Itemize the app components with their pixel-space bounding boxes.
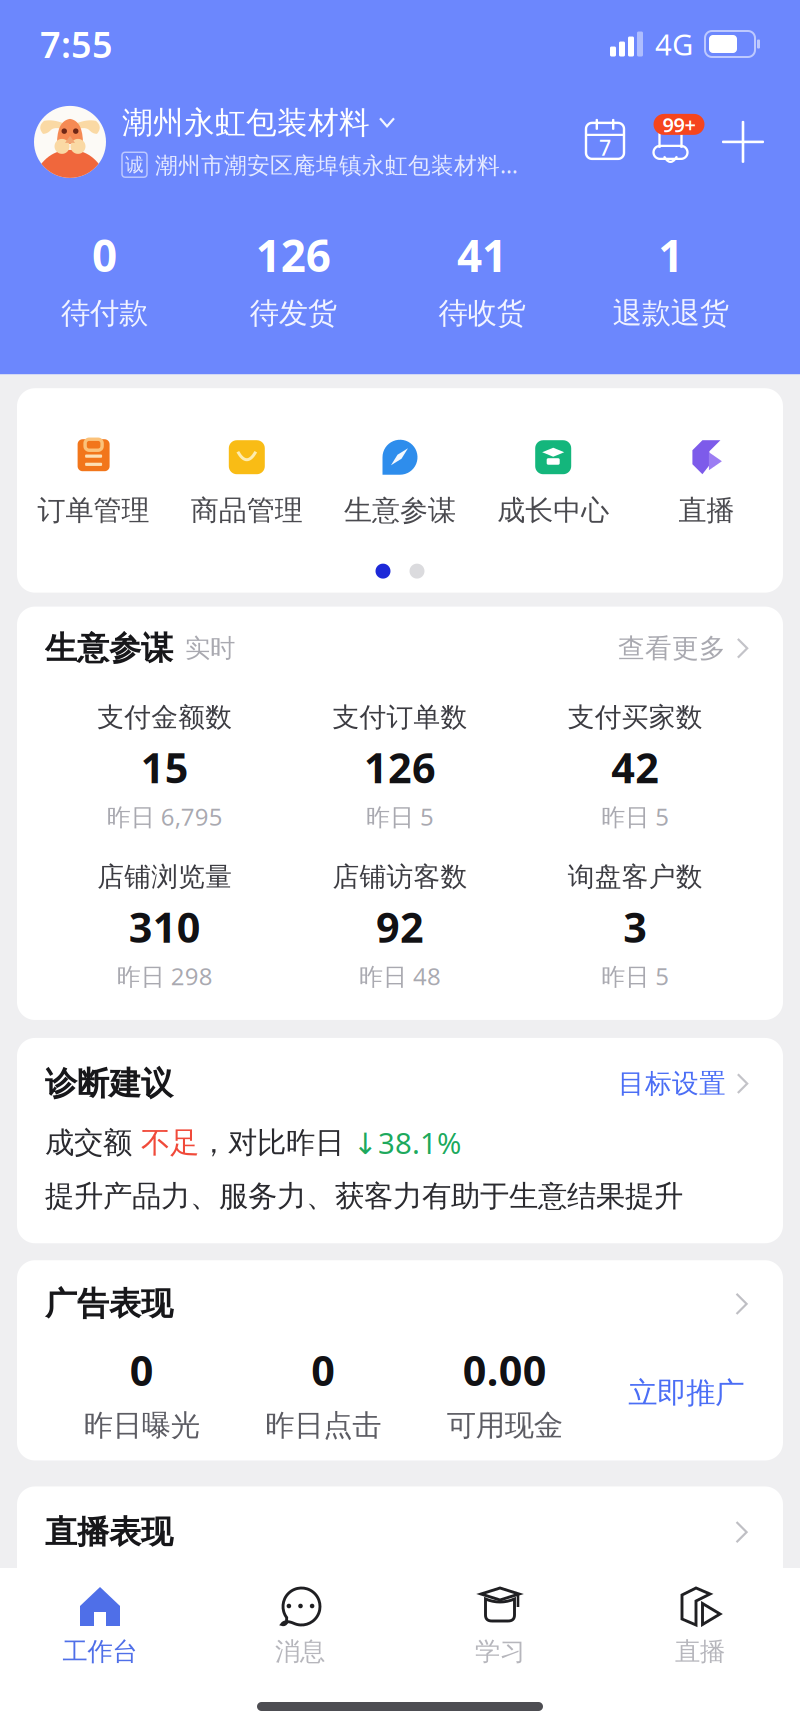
staticText: 店铺浏览量	[97, 860, 232, 893]
staticText: 提升产品力、服务力、获客力有助于生意结果提升	[45, 1178, 683, 1214]
staticText: 消息	[275, 1636, 325, 1667]
staticText: 诚	[125, 153, 144, 176]
button[interactable]: 商品管理	[170, 437, 323, 528]
staticText: 0.00	[463, 1342, 547, 1397]
staticText: 询盘客户数	[568, 860, 703, 893]
staticText: ↓38.1%	[353, 1123, 461, 1162]
staticText: 41	[457, 226, 507, 284]
staticText: ，对比昨日	[199, 1125, 353, 1161]
staticText: 查看更多	[618, 632, 726, 665]
button[interactable]: 直播表现详情	[727, 1518, 755, 1546]
button[interactable]: 消息	[200, 1586, 400, 1667]
button[interactable]: 直播	[600, 1586, 800, 1667]
staticText: 不足	[141, 1125, 199, 1161]
staticText: 工作台	[62, 1636, 137, 1667]
staticText: 310	[129, 899, 201, 954]
staticText: 目标设置	[618, 1067, 726, 1100]
staticText: 92	[376, 899, 424, 954]
staticText: 成交额	[45, 1125, 141, 1161]
button[interactable]: 潮州永虹包装材料	[34, 104, 518, 180]
staticText: 0	[130, 1342, 154, 1397]
staticText: 42	[611, 740, 659, 795]
staticText: 直播表现	[45, 1512, 173, 1552]
button[interactable]: 学习	[400, 1586, 600, 1667]
staticText: 诊断建议	[45, 1064, 173, 1103]
button[interactable]: 成长中心	[477, 437, 630, 528]
staticText: 昨日曝光	[84, 1407, 200, 1443]
staticText: 昨日 5	[366, 801, 434, 832]
staticText: 昨日 48	[359, 960, 441, 992]
staticText: 0	[92, 226, 117, 284]
staticText: 0	[311, 1342, 335, 1397]
staticText: 4G	[655, 24, 693, 63]
button[interactable]: 日程	[584, 119, 626, 165]
staticText: 支付买家数	[568, 701, 703, 734]
staticText: 潮州市潮安区庵埠镇永虹包装材料…	[155, 150, 518, 180]
staticText: 可用现金	[447, 1407, 563, 1443]
staticText: 待发货	[250, 295, 337, 331]
staticText: 7	[599, 133, 611, 161]
staticText: 学习	[475, 1636, 525, 1667]
button[interactable]: 广告表现详情	[727, 1290, 755, 1318]
button[interactable]: 直播	[630, 437, 783, 528]
button[interactable]: 消息通知	[650, 114, 696, 170]
staticText: 支付订单数	[332, 701, 467, 734]
button[interactable]: 0	[10, 226, 199, 331]
button[interactable]: 生意参谋	[323, 437, 477, 528]
staticText: 实时	[185, 633, 235, 664]
button[interactable]: 41	[387, 226, 576, 331]
staticText: 昨日 298	[117, 960, 213, 992]
button[interactable]: 订单管理	[17, 437, 170, 528]
staticText: 退款退货	[613, 295, 729, 331]
staticText: 潮州永虹包装材料	[122, 104, 370, 142]
staticText: 成长中心	[497, 493, 609, 528]
staticText: 7:55	[40, 20, 113, 68]
staticText: 昨日 6,795	[107, 801, 223, 832]
button[interactable]: 添加	[720, 119, 766, 165]
staticText: 昨日 5	[601, 801, 669, 832]
staticText: 支付金额数	[97, 701, 232, 734]
staticText: 待收货	[438, 295, 525, 331]
staticText: 立即推广	[628, 1375, 744, 1411]
staticText: 99+	[662, 111, 695, 138]
button[interactable]: 工作台	[0, 1586, 200, 1667]
button[interactable]: 126	[199, 226, 388, 331]
staticText: 126	[256, 226, 331, 284]
button[interactable]: 1	[576, 226, 765, 331]
staticText: 订单管理	[38, 493, 150, 528]
staticText: 商品管理	[191, 493, 303, 528]
staticText: 广告表现	[45, 1284, 173, 1323]
button[interactable]: 查看更多	[618, 632, 755, 665]
staticText: 生意参谋	[45, 629, 173, 668]
staticText: 店铺访客数	[332, 860, 467, 893]
staticText: 1	[658, 226, 683, 284]
staticText: 昨日点击	[265, 1407, 381, 1443]
staticText: 直播	[675, 1636, 725, 1667]
button[interactable]: 立即推广	[595, 1375, 777, 1411]
staticText: 15	[141, 740, 189, 795]
staticText: 直播	[678, 493, 734, 528]
staticText: 昨日 5	[601, 960, 669, 992]
staticText: 待付款	[61, 295, 148, 331]
staticText: 生意参谋	[344, 493, 456, 528]
button[interactable]: 目标设置	[618, 1067, 755, 1100]
staticText: 3	[623, 899, 647, 954]
staticText: 126	[364, 740, 436, 795]
